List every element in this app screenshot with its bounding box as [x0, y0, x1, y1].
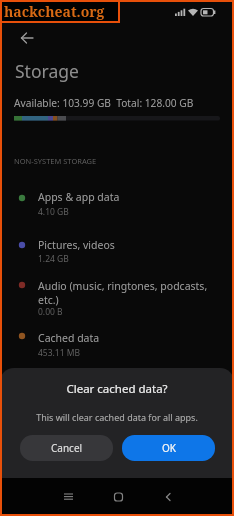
staticText: Apps & app data [38, 190, 120, 204]
staticText: etc.) [38, 293, 59, 307]
staticText: Storage [15, 59, 79, 83]
staticText: Pictures, videos [38, 238, 115, 252]
staticText: Cached data [38, 331, 100, 345]
staticText: Clear cached data? [0, 381, 234, 397]
staticText: Cancel [51, 441, 83, 455]
staticText: 0.00 B [38, 306, 63, 318]
staticText: Available: 103.99 GB Total: 128.00 GB [14, 96, 194, 110]
staticText: 4.10 GB [38, 206, 69, 218]
staticText: This will clear cached data for all apps… [0, 411, 234, 423]
staticText: 1.24 GB [38, 253, 69, 265]
staticText: hackcheat.org [4, 2, 105, 21]
staticText: NON-SYSTEM STORAGE [14, 156, 97, 166]
staticText: Audio (music, ringtones, podcasts, [38, 279, 208, 293]
staticText: 453.11 MB [38, 347, 81, 359]
staticText: OK [162, 441, 176, 455]
